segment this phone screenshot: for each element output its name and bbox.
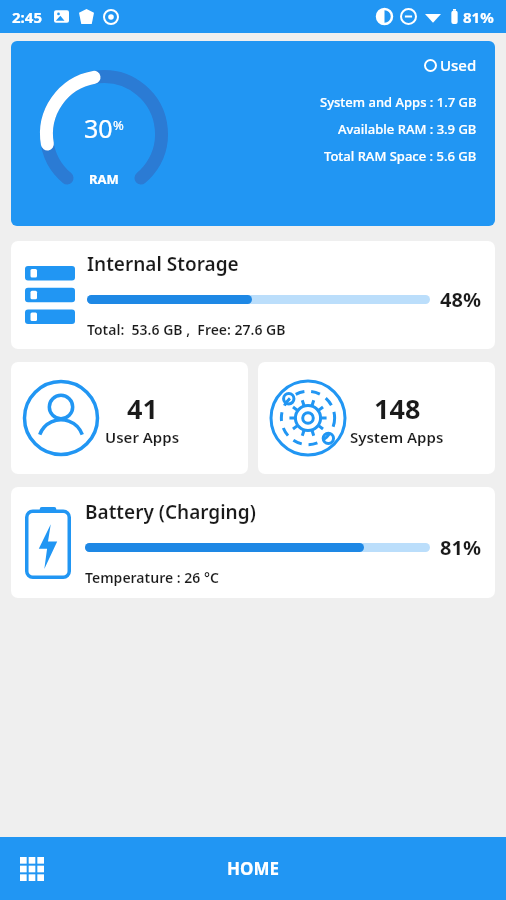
staticText: 41 xyxy=(127,390,158,427)
staticText: % xyxy=(113,116,124,134)
button[interactable]: Internal Storage xyxy=(11,241,495,349)
staticText: 148 xyxy=(374,390,421,427)
staticText: Used xyxy=(440,55,477,75)
staticText: 48% xyxy=(440,286,481,313)
button[interactable]: 148 xyxy=(258,362,495,474)
button[interactable]: Battery (Charging) xyxy=(11,487,495,598)
staticText: 30 xyxy=(84,111,113,145)
staticText: RAM xyxy=(89,170,119,188)
staticText: 81% xyxy=(440,534,481,561)
staticText: Total RAM Space : 5.6 GB xyxy=(324,147,477,165)
staticText: System Apps xyxy=(350,427,444,447)
staticText: 2:45 xyxy=(12,7,42,27)
button[interactable]: Apps grid xyxy=(8,845,56,893)
staticText: Temperature : 26 °C xyxy=(85,568,219,587)
staticText: System and Apps : 1.7 GB xyxy=(320,93,477,111)
staticText: HOME xyxy=(227,857,280,880)
staticText: Available RAM : 3.9 GB xyxy=(338,120,477,138)
button[interactable]: HOME xyxy=(197,845,310,892)
staticText: 81% xyxy=(463,7,494,27)
staticText: Internal Storage xyxy=(87,251,239,277)
staticText: Battery (Charging) xyxy=(85,499,256,525)
button[interactable]: 41 xyxy=(11,362,248,474)
staticText: Total: 53.6 GB , Free: 27.6 GB xyxy=(87,320,286,339)
staticText: User Apps xyxy=(105,427,180,447)
button[interactable]: 30 xyxy=(11,41,495,226)
